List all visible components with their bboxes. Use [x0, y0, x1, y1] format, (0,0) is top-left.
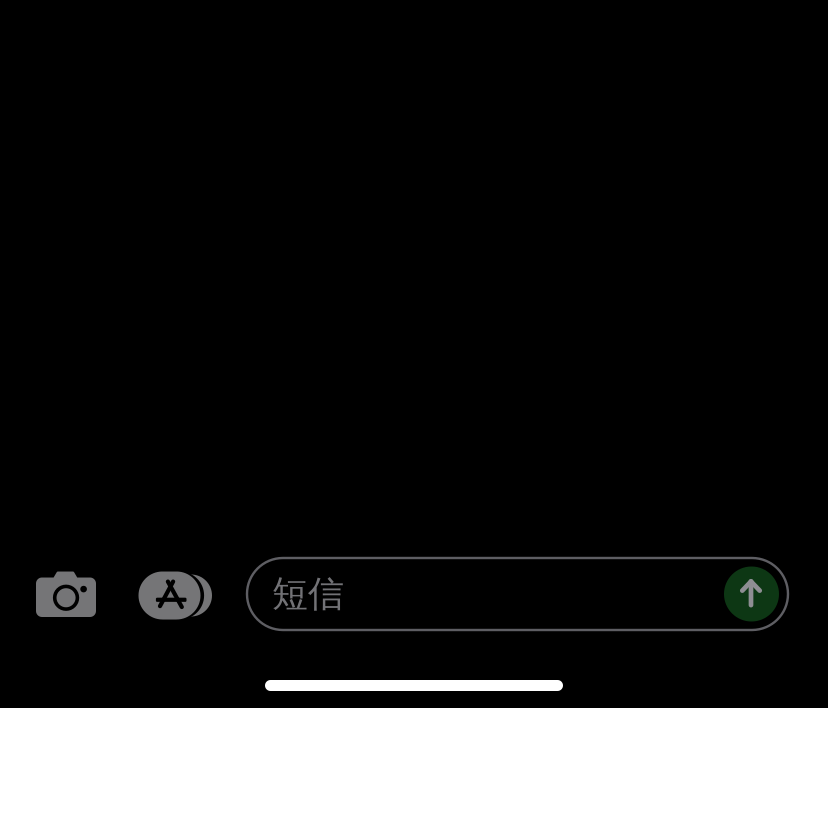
- button[interactable]: Camera: [26, 561, 106, 627]
- button[interactable]: Messages apps: [128, 561, 222, 629]
- button[interactable]: 短信: [247, 558, 788, 630]
- button[interactable]: Send: [724, 566, 779, 621]
- staticText: 短信: [272, 572, 344, 616]
